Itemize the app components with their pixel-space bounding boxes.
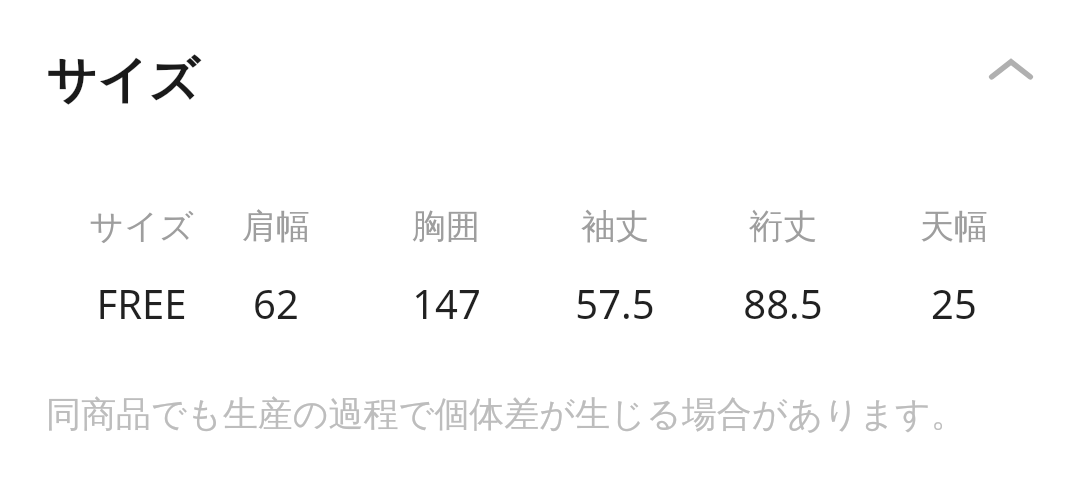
- staticText: 肩幅: [242, 205, 310, 248]
- staticText: 147: [412, 276, 481, 330]
- button[interactable]: Collapse size section: [978, 36, 1044, 102]
- staticText: 57.5: [575, 276, 655, 330]
- staticText: 同商品でも生産の過程で個体差が生じる場合があります。: [46, 392, 966, 436]
- staticText: 天幅: [920, 205, 988, 248]
- staticText: 裄丈: [749, 205, 817, 248]
- staticText: FREE: [96, 276, 187, 330]
- staticText: 88.5: [743, 276, 823, 330]
- staticText: 胸囲: [412, 205, 480, 248]
- staticText: サイズ: [46, 49, 200, 112]
- button[interactable]: サイズ: [0, 0, 1080, 160]
- staticText: サイズ: [89, 205, 194, 248]
- staticText: 袖丈: [581, 205, 649, 248]
- staticText: 62: [253, 276, 299, 330]
- staticText: 25: [931, 276, 977, 330]
